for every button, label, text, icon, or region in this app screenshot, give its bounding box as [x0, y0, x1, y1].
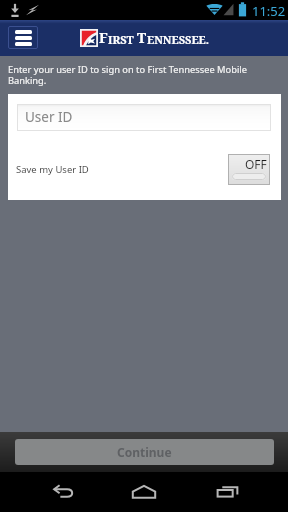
- staticText: 11:52: [252, 2, 286, 20]
- button[interactable]: Continue: [15, 439, 274, 465]
- staticText: User ID: [25, 108, 73, 126]
- staticText: IRST: [108, 32, 134, 47]
- staticText: Enter your user ID to sign on to First T…: [8, 63, 247, 87]
- staticText: T: [137, 28, 147, 47]
- button[interactable]: User ID: [17, 104, 271, 131]
- button[interactable]: Save my User ID toggle, off: [228, 154, 270, 185]
- button[interactable]: Back: [40, 472, 88, 512]
- staticText: Save my User ID: [16, 163, 89, 176]
- button[interactable]: Menu: [8, 26, 38, 49]
- staticText: ENNESSEE.: [147, 32, 210, 47]
- button[interactable]: Recent apps: [204, 472, 252, 512]
- button[interactable]: Home: [120, 472, 168, 512]
- staticText: F: [99, 28, 108, 47]
- staticText: OFF: [245, 156, 267, 172]
- staticText: Continue: [117, 444, 172, 460]
